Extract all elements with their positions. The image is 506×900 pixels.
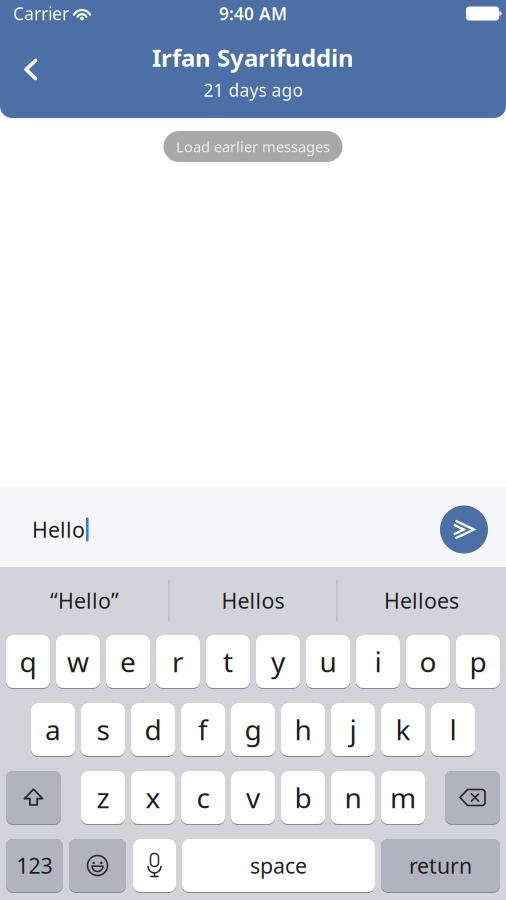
- button[interactable]: s: [81, 703, 125, 757]
- button[interactable]: [133, 839, 176, 893]
- staticText: c: [196, 779, 209, 816]
- staticText: i: [374, 643, 381, 680]
- button[interactable]: t: [206, 635, 250, 689]
- button[interactable]: h: [281, 703, 325, 757]
- staticText: a: [45, 711, 61, 748]
- button[interactable]: r: [156, 635, 200, 689]
- staticText: b: [294, 779, 311, 816]
- button[interactable]: [445, 771, 500, 825]
- button[interactable]: y: [256, 635, 300, 689]
- staticText: y: [271, 643, 285, 680]
- button[interactable]: m: [381, 771, 425, 825]
- button[interactable]: p: [456, 635, 500, 689]
- button[interactable]: n: [331, 771, 375, 825]
- button[interactable]: o: [406, 635, 450, 689]
- staticText: return: [409, 851, 472, 880]
- button[interactable]: b: [281, 771, 325, 825]
- staticText: w: [67, 643, 89, 680]
- button[interactable]: return: [381, 839, 500, 893]
- staticText: v: [246, 779, 260, 816]
- staticText: Hellos: [221, 586, 284, 615]
- button[interactable]: f: [181, 703, 225, 757]
- button[interactable]: [69, 839, 126, 893]
- button[interactable]: a: [31, 703, 75, 757]
- button[interactable]: c: [181, 771, 225, 825]
- staticText: 9:40 AM: [219, 2, 287, 25]
- button[interactable]: Helloes: [337, 566, 505, 635]
- staticText: p: [469, 643, 486, 680]
- staticText: s: [96, 711, 109, 748]
- staticText: x: [145, 779, 160, 816]
- staticText: “Hello”: [50, 586, 119, 615]
- staticText: Carrier: [13, 2, 69, 25]
- staticText: t: [223, 643, 233, 680]
- button[interactable]: d: [131, 703, 175, 757]
- button[interactable]: v: [231, 771, 275, 825]
- button[interactable]: space: [182, 839, 375, 893]
- staticText: Helloes: [384, 586, 459, 615]
- button[interactable]: 123: [6, 839, 63, 893]
- button[interactable]: [440, 505, 488, 553]
- staticText: Irfan Syarifuddin: [152, 42, 354, 73]
- button[interactable]: k: [381, 703, 425, 757]
- staticText: m: [390, 779, 416, 816]
- button[interactable]: q: [6, 635, 50, 689]
- button[interactable]: w: [56, 635, 100, 689]
- staticText: q: [19, 643, 36, 680]
- button[interactable]: u: [306, 635, 350, 689]
- staticText: space: [250, 851, 307, 880]
- staticText: f: [198, 711, 208, 748]
- button[interactable]: z: [81, 771, 125, 825]
- button[interactable]: [6, 771, 61, 825]
- staticText: e: [120, 643, 136, 680]
- staticText: Hello: [32, 515, 85, 544]
- staticText: d: [144, 711, 161, 748]
- staticText: h: [294, 711, 311, 748]
- staticText: o: [419, 643, 436, 680]
- staticText: n: [344, 779, 361, 816]
- button[interactable]: Hellos: [169, 566, 336, 635]
- staticText: l: [449, 711, 456, 748]
- staticText: k: [395, 711, 410, 748]
- staticText: g: [244, 711, 261, 748]
- button[interactable]: [0, 47, 40, 97]
- button[interactable]: “Hello”: [0, 566, 168, 635]
- button[interactable]: l: [431, 703, 475, 757]
- staticText: 21 days ago: [203, 78, 302, 101]
- button[interactable]: e: [106, 635, 150, 689]
- button[interactable]: Load earlier messages: [163, 131, 342, 162]
- staticText: u: [319, 643, 336, 680]
- staticText: r: [172, 643, 184, 680]
- button[interactable]: x: [131, 771, 175, 825]
- button[interactable]: i: [356, 635, 400, 689]
- button[interactable]: Hello: [32, 499, 88, 559]
- staticText: 123: [16, 851, 52, 880]
- staticText: Load earlier messages: [176, 137, 330, 156]
- button[interactable]: g: [231, 703, 275, 757]
- button[interactable]: j: [331, 703, 375, 757]
- staticText: j: [349, 711, 356, 748]
- staticText: z: [96, 779, 109, 816]
